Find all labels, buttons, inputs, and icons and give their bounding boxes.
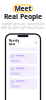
staticText: with people right around you. [1,26,45,29]
staticText: Real People [4,12,42,21]
staticText: Meet [14,4,31,13]
staticText: Nearby Now [9,39,20,46]
staticText: Discover genuine connections [1,22,44,26]
